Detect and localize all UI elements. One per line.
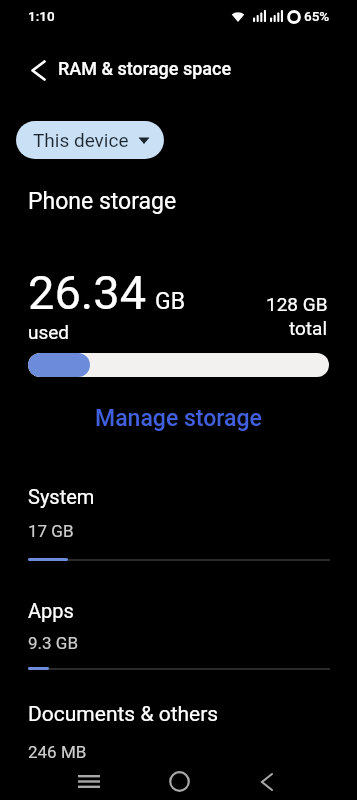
button[interactable]: Documents & others [0,690,357,789]
button[interactable]: System [0,473,357,572]
staticText: 17 GB [28,521,74,541]
staticText: RAM & storage space [58,58,232,79]
button[interactable] [155,763,203,800]
staticText: System [28,485,95,508]
staticText: Documents & others [28,702,219,727]
staticText: Phone storage [28,188,177,215]
button[interactable]: Apps [0,587,357,686]
staticText: used [28,321,70,343]
staticText: 65% [304,8,330,24]
button[interactable]: This device [16,121,164,159]
staticText: 246 MB [28,742,87,762]
staticText: 9.3 GB [28,633,78,653]
staticText: 26.34 [28,265,147,320]
staticText: GB [155,288,185,315]
button[interactable] [65,763,113,800]
staticText: 128 GB [266,293,328,315]
button[interactable] [14,46,62,94]
staticText: This device [33,129,129,151]
staticText: total [289,317,328,339]
button[interactable]: Manage storage [85,405,272,432]
button[interactable] [243,763,291,800]
staticText: Apps [28,599,74,622]
staticText: Manage storage [95,405,262,432]
staticText: 1:10 [28,8,55,24]
